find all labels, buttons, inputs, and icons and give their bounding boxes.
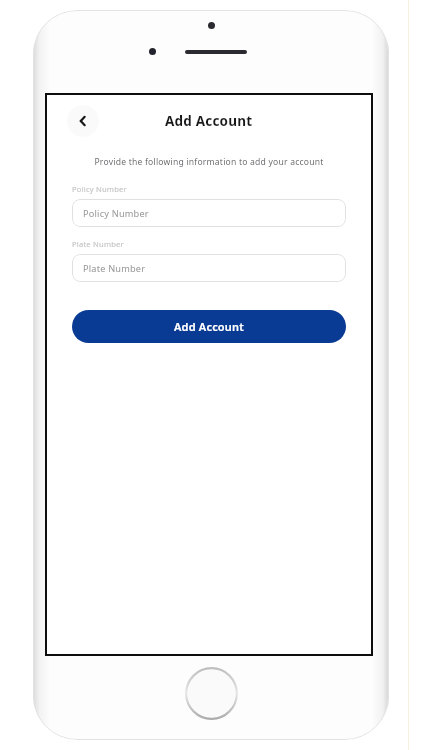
- staticText: Plate Number: [83, 262, 146, 275]
- staticText: Provide the following information to add…: [63, 156, 355, 168]
- button[interactable]: Add Account: [72, 310, 346, 343]
- staticText: Add Account: [165, 112, 253, 130]
- staticText: Policy Number: [72, 184, 127, 194]
- staticText: Policy Number: [83, 207, 149, 220]
- button[interactable]: Plate Number: [72, 254, 346, 282]
- staticText: Plate Number: [72, 239, 124, 249]
- button[interactable]: Policy Number: [72, 199, 346, 227]
- button[interactable]: Back: [67, 105, 99, 137]
- staticText: Add Account: [174, 319, 244, 334]
